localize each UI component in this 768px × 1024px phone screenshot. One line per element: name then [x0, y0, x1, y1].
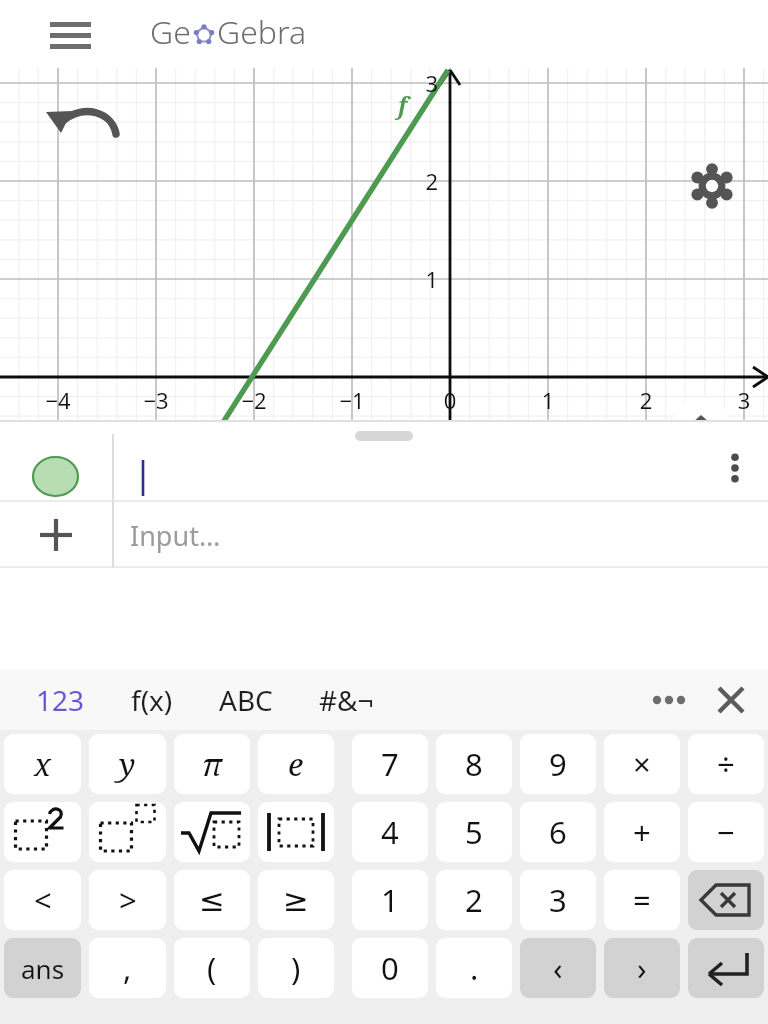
- button[interactable]: >: [89, 870, 166, 930]
- staticText: 0: [381, 947, 399, 989]
- staticText: ,: [123, 947, 132, 989]
- staticText: ×: [633, 743, 651, 785]
- staticText: −3: [136, 385, 176, 415]
- button[interactable]: 1: [352, 870, 428, 930]
- staticText: ≥: [283, 882, 309, 918]
- staticText: ‹: [553, 947, 563, 989]
- button[interactable]: ,: [89, 938, 166, 998]
- staticText: f(x): [131, 681, 173, 719]
- staticText: #&¬: [319, 681, 374, 719]
- staticText: ÷: [717, 743, 735, 785]
- staticText: =: [633, 879, 651, 921]
- button[interactable]: More options: [708, 441, 762, 495]
- staticText: 123: [36, 681, 85, 719]
- button[interactable]: 5: [436, 802, 512, 862]
- button[interactable]: <: [4, 870, 81, 930]
- button[interactable]: Absolute value: [258, 802, 334, 862]
- button[interactable]: Input…: [0, 502, 768, 568]
- staticText: 2: [410, 166, 438, 196]
- button[interactable]: 3: [520, 870, 596, 930]
- button[interactable]: x: [4, 734, 81, 794]
- button[interactable]: Square: [4, 802, 81, 862]
- button[interactable]: (: [174, 938, 250, 998]
- button[interactable]: +: [604, 802, 680, 862]
- staticText: 7: [381, 743, 399, 785]
- button[interactable]: Home: [668, 395, 734, 461]
- button[interactable]: y: [89, 734, 166, 794]
- staticText: 3: [724, 385, 764, 415]
- button[interactable]: #&¬: [313, 673, 380, 727]
- button[interactable]: Undo: [38, 96, 108, 152]
- staticText: ≤: [199, 882, 225, 918]
- button[interactable]: Enter: [688, 938, 764, 998]
- button[interactable]: ›: [604, 938, 680, 998]
- staticText: ans: [21, 951, 65, 986]
- button[interactable]: ≥: [258, 870, 334, 930]
- staticText: Input…: [130, 517, 221, 554]
- staticText: f: [398, 89, 408, 120]
- button[interactable]: Menu: [38, 11, 102, 57]
- button[interactable]: Power: [89, 802, 166, 862]
- button[interactable]: 8: [436, 734, 512, 794]
- button[interactable]: ÷: [688, 734, 764, 794]
- button[interactable]: .: [436, 938, 512, 998]
- staticText: e: [288, 743, 304, 785]
- staticText: π: [202, 743, 223, 785]
- staticText: 8: [465, 743, 483, 785]
- button[interactable]: ×: [604, 734, 680, 794]
- staticText: 1: [528, 385, 568, 415]
- button[interactable]: e: [258, 734, 334, 794]
- button[interactable]: 4: [352, 802, 428, 862]
- staticText: ): [291, 947, 301, 989]
- button[interactable]: 2: [436, 870, 512, 930]
- button[interactable]: 0: [352, 938, 428, 998]
- button[interactable]: =: [604, 870, 680, 930]
- button[interactable]: 9: [520, 734, 596, 794]
- staticText: −4: [38, 385, 78, 415]
- button[interactable]: 6: [520, 802, 596, 862]
- button[interactable]: ≤: [174, 870, 250, 930]
- button[interactable]: Backspace: [688, 870, 764, 930]
- button[interactable]: Settings: [688, 162, 736, 210]
- button[interactable]: Close keyboard: [706, 675, 756, 725]
- staticText: 3: [410, 68, 438, 98]
- staticText: y: [119, 743, 136, 785]
- staticText: x: [34, 743, 51, 785]
- staticText: 2: [626, 385, 666, 415]
- button[interactable]: More options: [0, 420, 768, 502]
- staticText: Ge: [150, 10, 191, 54]
- staticText: Gebra: [217, 10, 307, 54]
- staticText: 9: [549, 743, 567, 785]
- button[interactable]: More keyboard options: [644, 675, 694, 725]
- button[interactable]: Square root: [174, 802, 250, 862]
- staticText: 1: [381, 879, 399, 921]
- staticText: ABC: [219, 681, 273, 719]
- staticText: 6: [549, 811, 567, 853]
- staticText: 0: [430, 385, 470, 415]
- staticText: .: [470, 947, 479, 989]
- staticText: 2: [465, 879, 483, 921]
- staticText: (: [207, 947, 217, 989]
- staticText: −2: [234, 385, 274, 415]
- button[interactable]: ABC: [213, 673, 279, 727]
- button[interactable]: π: [174, 734, 250, 794]
- button[interactable]: ans: [4, 938, 81, 998]
- button[interactable]: f(x): [125, 673, 179, 727]
- staticText: −1: [332, 385, 372, 415]
- staticText: 5: [465, 811, 483, 853]
- staticText: 3: [549, 879, 567, 921]
- button[interactable]: 123: [30, 673, 91, 727]
- button[interactable]: −: [688, 802, 764, 862]
- button[interactable]: 7: [352, 734, 428, 794]
- staticText: −: [717, 811, 735, 853]
- button[interactable]: ‹: [520, 938, 596, 998]
- staticText: 4: [381, 811, 399, 853]
- staticText: 1: [410, 264, 438, 294]
- staticText: +: [633, 811, 651, 853]
- button[interactable]: ): [258, 938, 334, 998]
- staticText: <: [34, 879, 52, 921]
- staticText: ›: [637, 947, 647, 989]
- staticText: >: [119, 879, 137, 921]
